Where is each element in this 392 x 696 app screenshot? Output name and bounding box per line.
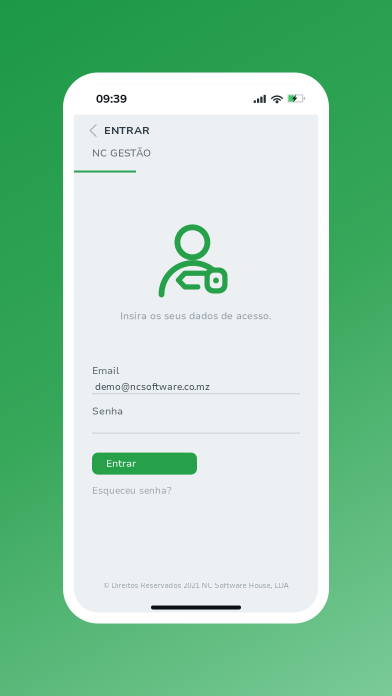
button[interactable]: Entrar xyxy=(92,453,197,475)
staticText: demo@ncsoftware.co.mz xyxy=(95,381,210,393)
staticText: Esqueceu senha? xyxy=(92,485,171,497)
staticText: © Direitos Reservados 2021 NC Software H… xyxy=(103,581,288,590)
staticText: NC GESTÃO xyxy=(92,146,151,160)
staticText: Entrar xyxy=(106,457,136,470)
staticText: Senha xyxy=(92,405,123,418)
staticText: ENTRAR xyxy=(104,123,150,138)
staticText: Email xyxy=(92,364,119,377)
button[interactable]: Esqueceu senha? xyxy=(92,485,171,497)
staticText: Insira os seus dados de acesso. xyxy=(120,309,272,323)
button[interactable]: NC GESTÃO xyxy=(74,146,318,172)
staticText: 09:39 xyxy=(96,91,127,107)
button[interactable]: ENTRAR xyxy=(74,120,318,140)
